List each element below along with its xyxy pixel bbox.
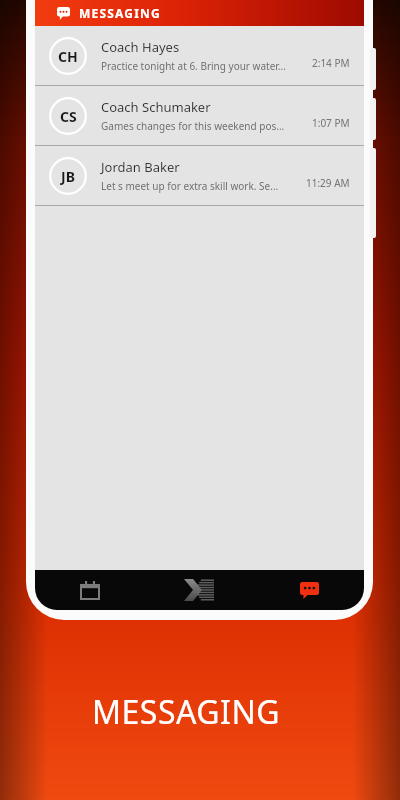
other: Schedule — [81, 581, 99, 599]
button[interactable]: CH — [35, 26, 364, 85]
staticText: Let s meet up for extra skill work. Se..… — [101, 179, 279, 193]
staticText: 2:14 PM — [312, 56, 350, 70]
button[interactable]: Home — [144, 570, 254, 610]
staticText: JB — [61, 167, 75, 186]
other: Messages — [300, 582, 319, 599]
staticText: Jordan Baker — [101, 158, 180, 176]
button[interactable]: JB — [35, 146, 364, 205]
other: Home — [184, 579, 214, 601]
staticText: MESSAGING — [92, 690, 281, 734]
button[interactable]: Messages — [254, 570, 364, 610]
staticText: MESSAGING — [79, 5, 161, 21]
staticText: CH — [58, 47, 78, 66]
button[interactable]: Schedule — [35, 570, 144, 610]
button[interactable]: CS — [35, 86, 364, 145]
staticText: Games changes for this weekend pos... — [101, 119, 285, 133]
staticText: Practice tonight at 6. Bring your water.… — [101, 59, 286, 73]
staticText: 1:07 PM — [312, 116, 350, 130]
staticText: Coach Schumaker — [101, 98, 211, 116]
button[interactable]: Messaging — [35, 0, 364, 26]
staticText: CS — [60, 107, 77, 126]
staticText: 11:29 AM — [306, 176, 350, 190]
staticText: Coach Hayes — [101, 38, 180, 56]
other: Messaging — [57, 7, 70, 20]
